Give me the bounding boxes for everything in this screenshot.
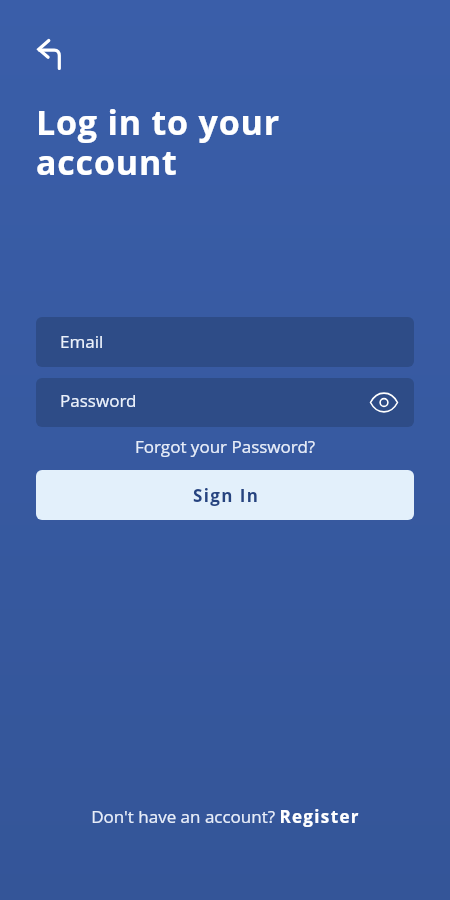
staticText: Sign In bbox=[193, 484, 260, 507]
button[interactable]: Don't have an account? Register bbox=[83, 802, 368, 831]
staticText: Don't have an account? Register bbox=[91, 805, 360, 828]
button[interactable]: Forgot your Password? bbox=[129, 432, 322, 461]
staticText: Forgot your Password? bbox=[135, 435, 316, 458]
staticText: Email bbox=[60, 330, 104, 353]
staticText: Log in to your account bbox=[36, 99, 280, 185]
button[interactable]: Show password bbox=[367, 386, 401, 420]
staticText: Password bbox=[60, 389, 137, 412]
button[interactable]: Email bbox=[36, 317, 414, 367]
button[interactable]: Password bbox=[36, 378, 414, 427]
button[interactable]: Back bbox=[29, 30, 75, 76]
button[interactable]: Sign In bbox=[36, 470, 414, 520]
